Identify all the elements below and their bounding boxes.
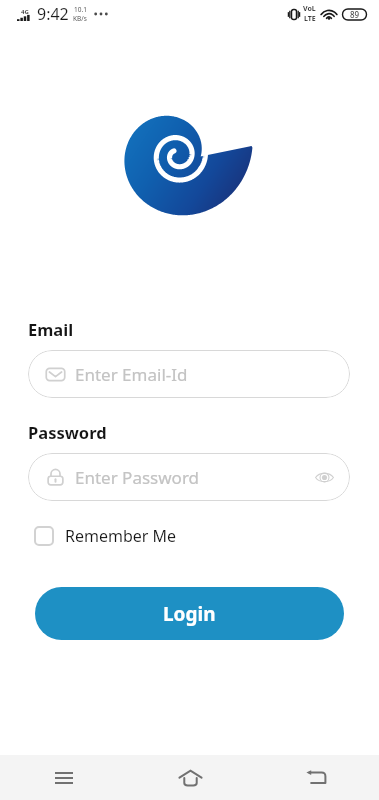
button[interactable]: Home [127,755,253,800]
staticText: 4G [21,8,29,16]
staticText: Email [28,318,74,340]
staticText: LTE [304,14,316,24]
staticText: 9:42 [37,3,69,25]
staticText: Remember Me [65,525,177,547]
button[interactable]: Recent apps [0,755,127,800]
staticText: Enter Password [75,466,200,489]
staticText: KB/s [73,14,87,23]
button[interactable]: Remember Me [32,523,179,549]
button[interactable]: Enter Email-Id [28,350,350,398]
staticText: Password [28,421,107,443]
staticText: Login [163,601,216,627]
button[interactable]: Login [35,587,344,640]
staticText: 89 [350,9,360,20]
other: Show password [315,472,334,483]
staticText: VoL [303,4,316,14]
button[interactable]: Enter Password [28,453,350,501]
staticText: 10.1 [74,5,87,14]
button[interactable]: Back [253,755,379,800]
staticText: Enter Email-Id [75,363,188,386]
